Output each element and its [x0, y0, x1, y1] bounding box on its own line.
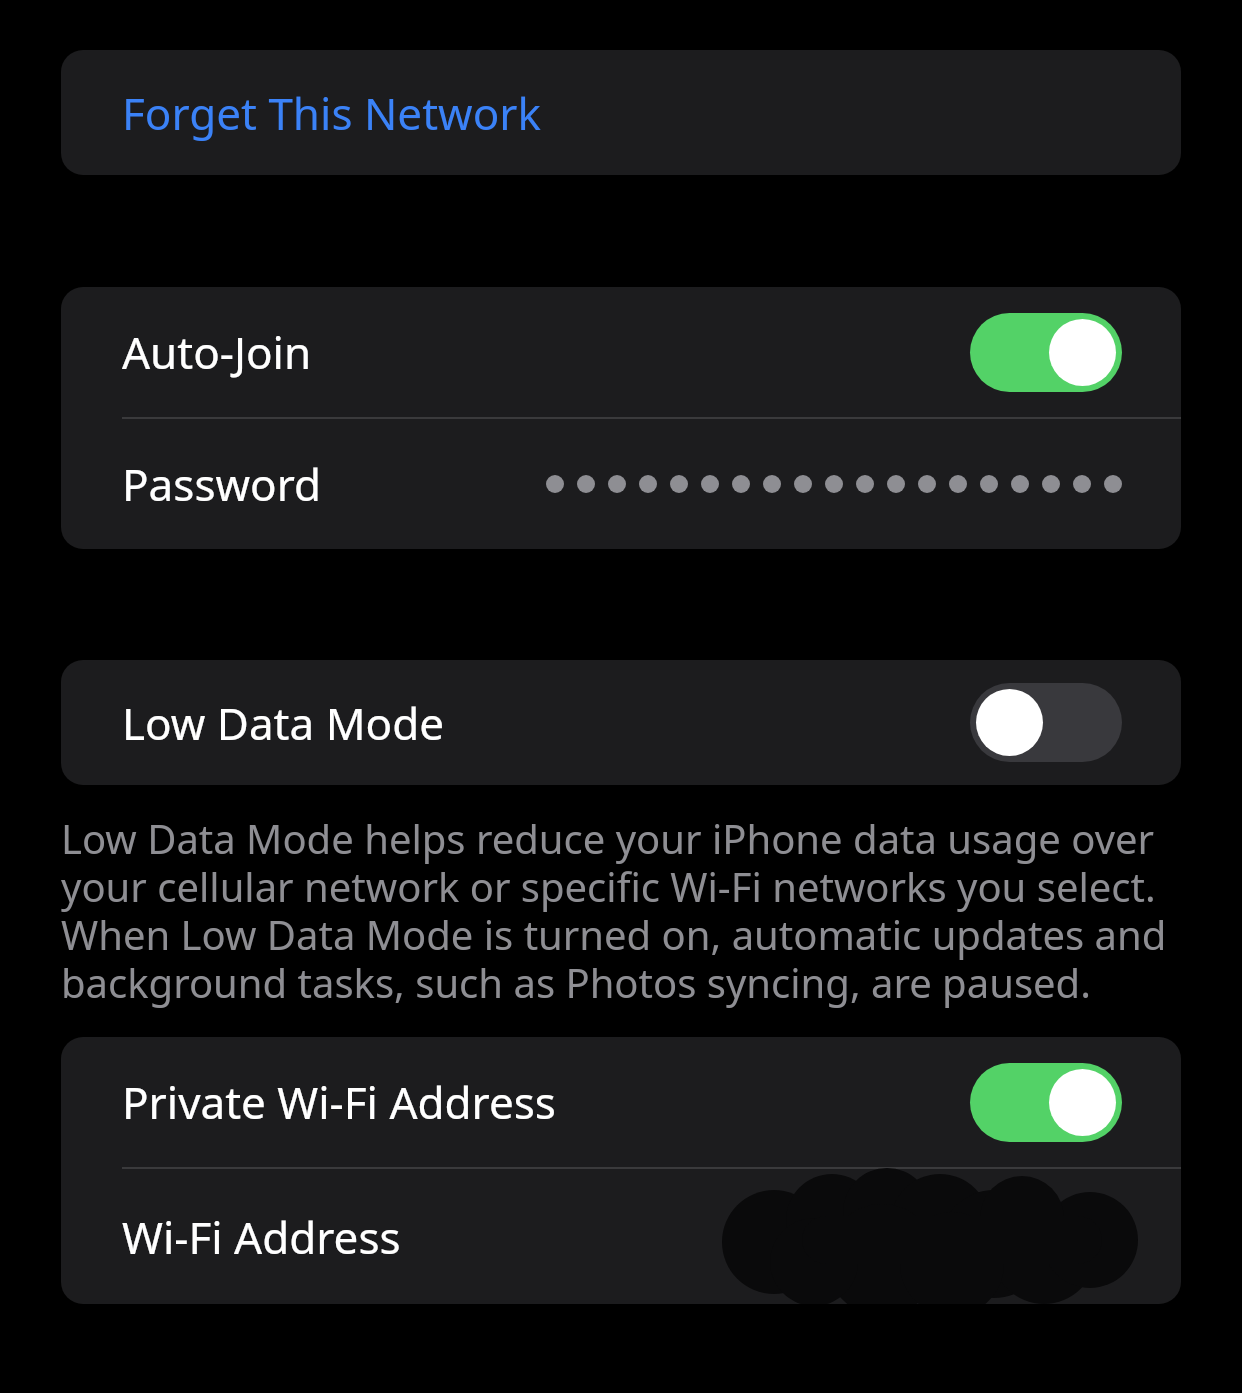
button[interactable]: Low Data Mode	[61, 660, 1181, 785]
staticText: Wi-Fi Address	[122, 1207, 401, 1267]
staticText: Password	[122, 454, 322, 514]
button[interactable]: Private Wi-Fi Address	[61, 1037, 1181, 1167]
button[interactable]: Low Data Mode toggle	[970, 683, 1122, 762]
button[interactable]: Forget This Network	[61, 50, 1181, 175]
button[interactable]: Auto-Join toggle	[970, 313, 1122, 392]
staticText: Auto-Join	[122, 322, 312, 382]
button[interactable]: Auto-Join	[61, 287, 1181, 417]
button[interactable]: Wi-Fi Address	[61, 1169, 1181, 1304]
staticText: Low Data Mode helps reduce your iPhone d…	[61, 811, 1190, 1009]
staticText: Low Data Mode	[122, 693, 445, 753]
button[interactable]: Private Wi-Fi Address toggle	[970, 1063, 1122, 1142]
button[interactable]: Password	[61, 419, 1181, 549]
staticText: Forget This Network	[122, 83, 541, 143]
staticText: Private Wi-Fi Address	[122, 1072, 556, 1132]
